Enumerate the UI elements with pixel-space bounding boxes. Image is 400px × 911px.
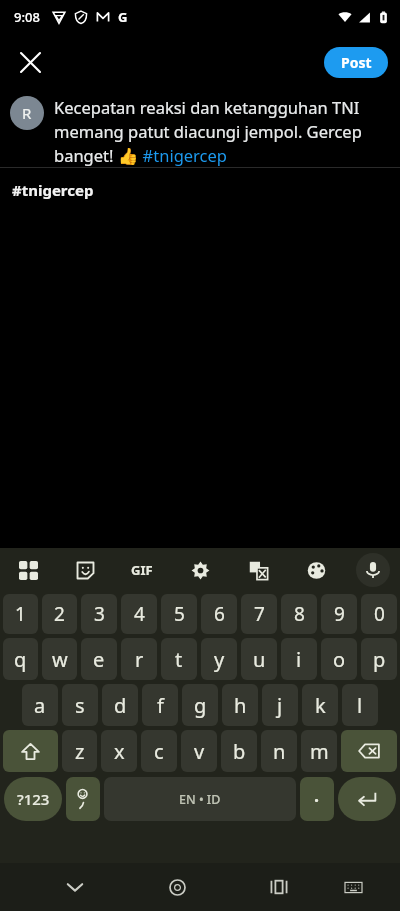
staticText: v	[194, 738, 205, 765]
staticText: q	[14, 646, 27, 673]
button[interactable]: #tnigercep	[0, 168, 400, 212]
button[interactable]: 2	[42, 594, 77, 634]
button[interactable]: Kecepatan reaksi dan ketangguhan TNI mem…	[54, 96, 388, 167]
button[interactable]: Emoji	[66, 777, 100, 821]
button[interactable]: q	[3, 638, 38, 680]
button[interactable]: Close	[8, 40, 52, 84]
button[interactable]: 6	[201, 594, 237, 634]
button[interactable]: 4	[121, 594, 157, 634]
button[interactable]: Backspace	[341, 730, 397, 772]
button[interactable]: Shift	[3, 730, 58, 772]
button[interactable]: c	[141, 730, 177, 772]
staticText: 6	[214, 601, 225, 627]
button[interactable]: z	[62, 730, 97, 772]
button[interactable]: j	[262, 684, 298, 726]
button[interactable]: Stickers	[67, 552, 103, 588]
button[interactable]: Translate	[240, 552, 276, 588]
button[interactable]: x	[101, 730, 137, 772]
staticText: EN • ID	[179, 791, 221, 808]
staticText: 9	[334, 601, 345, 627]
button[interactable]: 8	[281, 594, 317, 634]
staticText: j	[277, 692, 283, 719]
staticText: d	[114, 692, 127, 719]
staticText: 0	[374, 601, 385, 627]
button[interactable]: w	[42, 638, 77, 680]
button[interactable]: r	[121, 638, 157, 680]
button[interactable]: Home	[156, 866, 198, 908]
staticText: m	[310, 738, 329, 765]
staticText: f	[157, 692, 164, 719]
staticText: h	[234, 692, 247, 719]
button[interactable]: 1	[3, 594, 38, 634]
button[interactable]: d	[102, 684, 138, 726]
staticText: w	[52, 646, 68, 673]
button[interactable]: Theme	[298, 552, 334, 588]
staticText: Kecepatan reaksi dan ketangguhan TNI mem…	[54, 96, 388, 167]
staticText: GIF	[131, 561, 153, 579]
staticText: i	[296, 646, 302, 673]
staticText: 2	[54, 601, 65, 627]
staticText: ?123	[17, 789, 50, 809]
button[interactable]: 7	[241, 594, 277, 634]
button[interactable]: .	[300, 777, 334, 821]
button[interactable]: e	[81, 638, 117, 680]
staticText: 4	[134, 601, 145, 627]
staticText: 5	[174, 601, 185, 627]
button[interactable]: 0	[361, 594, 397, 634]
button[interactable]: v	[181, 730, 217, 772]
button[interactable]: Switch keyboard	[333, 867, 373, 907]
button[interactable]: EN • ID	[104, 777, 296, 821]
button[interactable]: R	[10, 96, 44, 130]
staticText: l	[357, 692, 363, 719]
button[interactable]: Voice input	[356, 553, 390, 587]
button[interactable]: 9	[321, 594, 357, 634]
button[interactable]: Post	[324, 47, 388, 78]
staticText: y	[214, 646, 225, 673]
button[interactable]: ?123	[4, 777, 62, 821]
staticText: e	[93, 646, 105, 673]
button[interactable]: k	[302, 684, 338, 726]
button[interactable]: f	[142, 684, 178, 726]
button[interactable]: y	[201, 638, 237, 680]
button[interactable]: b	[221, 730, 257, 772]
button[interactable]: n	[261, 730, 297, 772]
button[interactable]: 5	[161, 594, 197, 634]
button[interactable]: m	[301, 730, 337, 772]
staticText: k	[315, 692, 326, 719]
staticText: G	[118, 8, 128, 26]
staticText: o	[333, 646, 346, 673]
button[interactable]: h	[222, 684, 258, 726]
button[interactable]: g	[182, 684, 218, 726]
staticText: g	[194, 692, 207, 719]
staticText: #tnigercep	[12, 180, 94, 200]
staticText: a	[34, 692, 46, 719]
button[interactable]: Hide keyboard	[54, 866, 96, 908]
staticText: u	[253, 646, 266, 673]
staticText: c	[154, 738, 164, 765]
button[interactable]: GIF	[124, 552, 160, 588]
staticText: 7	[254, 601, 265, 627]
button[interactable]: u	[241, 638, 277, 680]
button[interactable]: Settings	[182, 552, 218, 588]
staticText: r	[135, 646, 144, 673]
button[interactable]: s	[62, 684, 98, 726]
staticText: 3	[94, 601, 105, 627]
staticText: s	[75, 692, 85, 719]
button[interactable]: o	[321, 638, 357, 680]
button[interactable]: p	[361, 638, 397, 680]
button[interactable]: t	[161, 638, 197, 680]
staticText: p	[373, 646, 386, 673]
button[interactable]: Apps	[10, 552, 46, 588]
button[interactable]: 3	[81, 594, 117, 634]
staticText: 8	[294, 601, 305, 627]
button[interactable]: i	[281, 638, 317, 680]
button[interactable]: Recent apps	[258, 866, 300, 908]
staticText: n	[273, 738, 286, 765]
button[interactable]: a	[22, 684, 58, 726]
button[interactable]: l	[342, 684, 378, 726]
staticText: 9:08	[14, 8, 40, 26]
staticText: Post	[341, 53, 372, 72]
staticText: t	[175, 646, 183, 673]
button[interactable]: Enter	[338, 777, 396, 821]
staticText: x	[114, 738, 125, 765]
